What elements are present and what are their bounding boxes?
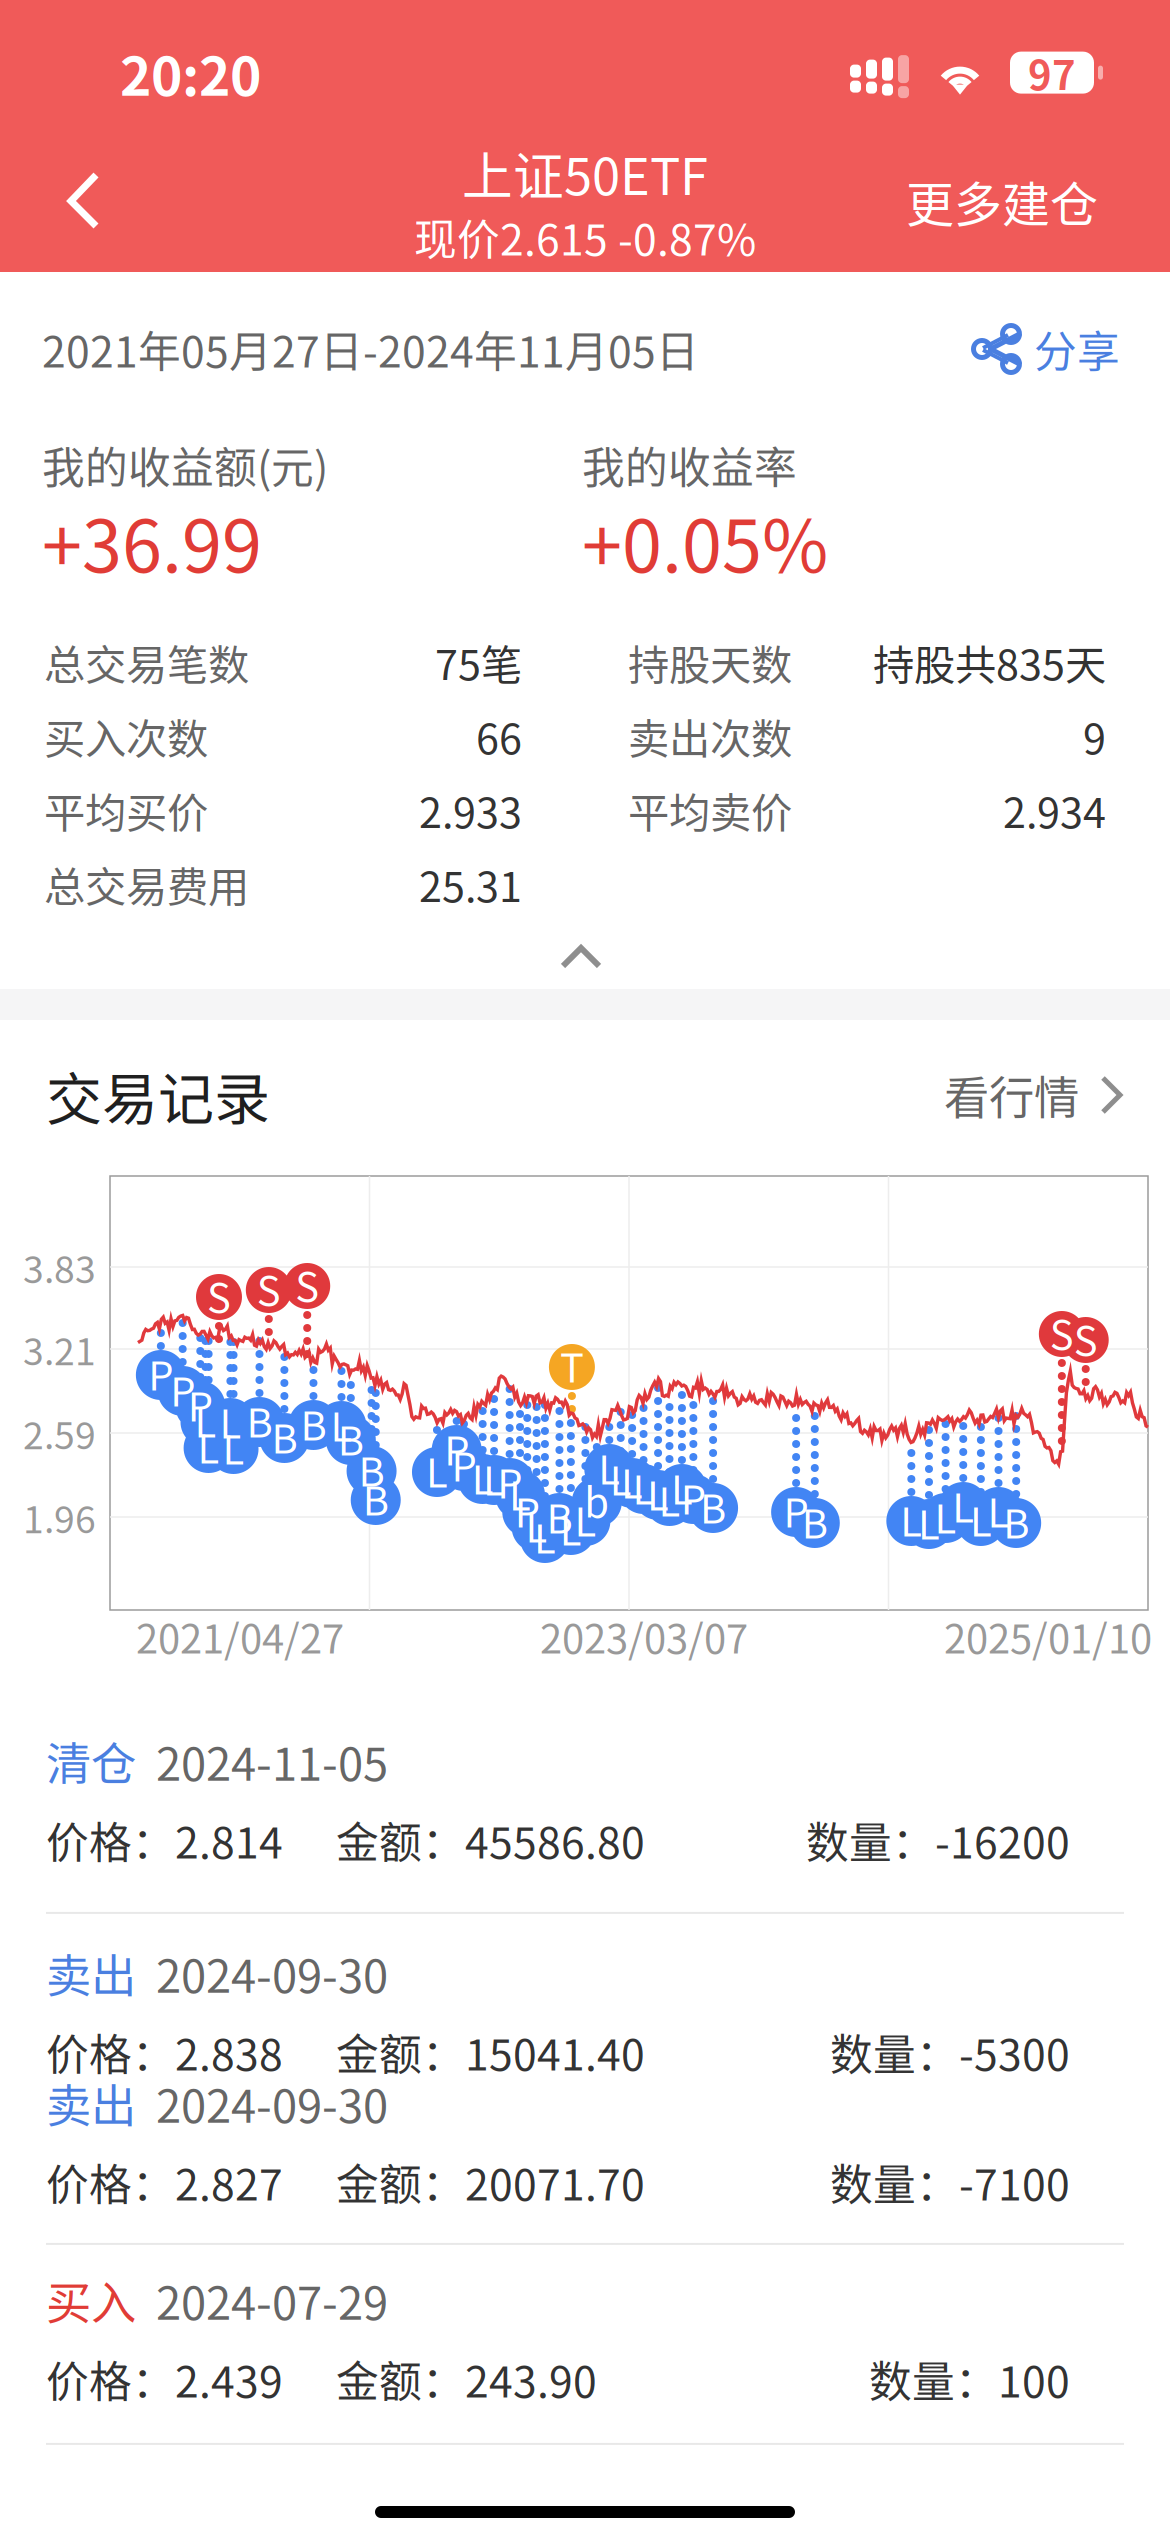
staticText: 看行情	[944, 1062, 1079, 1128]
staticText: 持股天数	[628, 632, 792, 692]
staticText: 价格：2.827	[46, 2151, 283, 2213]
staticText: L	[621, 1452, 643, 1510]
staticText: 持股共835天	[873, 632, 1106, 692]
staticText: 2.59	[23, 1406, 96, 1460]
staticText: L	[598, 1438, 620, 1496]
staticText: P	[148, 1344, 173, 1402]
staticText: 价格：2.814	[46, 1809, 283, 1871]
staticText: L	[219, 1392, 241, 1450]
staticText: P	[784, 1481, 809, 1539]
staticText: 金额：15041.40	[336, 2021, 645, 2083]
staticText: 价格：2.439	[46, 2348, 283, 2410]
staticText: L	[330, 1395, 352, 1453]
staticText: 卖出次数	[628, 706, 792, 766]
staticText: L	[658, 1470, 680, 1528]
staticText: 现价2.615 -0.87%	[414, 206, 756, 268]
staticText: B	[300, 1394, 326, 1452]
staticText: 97	[1028, 44, 1076, 102]
staticText: S	[295, 1255, 319, 1313]
button[interactable]: 卖出	[0, 1914, 1170, 2074]
staticText: L	[526, 1496, 548, 1554]
button[interactable]: 卖出	[0, 2074, 1170, 2243]
staticText: +0.05%	[582, 489, 828, 593]
staticText: S	[257, 1259, 281, 1317]
staticText: 我的收益率	[582, 434, 797, 496]
button[interactable]: 看行情	[944, 1062, 1124, 1128]
staticText: +36.99	[42, 489, 262, 593]
staticText: L	[632, 1458, 654, 1516]
staticText: 3.83	[23, 1240, 96, 1294]
staticText: L	[194, 1391, 216, 1449]
staticText: S	[1074, 1309, 1098, 1367]
staticText: P	[451, 1435, 476, 1493]
staticText: 20:20	[120, 34, 261, 111]
staticText: 2021年05月27日-2024年11月05日	[42, 318, 699, 380]
staticText: 卖出	[46, 1940, 136, 2006]
staticText: 金额：243.90	[336, 2348, 597, 2410]
staticText: L	[987, 1481, 1009, 1539]
staticText: B	[359, 1440, 385, 1498]
staticText: 3.21	[23, 1322, 96, 1376]
staticText: S	[207, 1266, 231, 1324]
staticText: L	[610, 1449, 632, 1507]
staticText: 1.96	[23, 1490, 96, 1544]
staticText: 2.933	[419, 780, 522, 840]
staticText: 买入次数	[44, 706, 208, 766]
button[interactable]: 清仓	[0, 1738, 1170, 1912]
staticText: B	[246, 1391, 272, 1449]
staticText: L	[900, 1490, 922, 1548]
staticText: 清仓	[46, 1728, 136, 1794]
staticText: 更多建仓	[906, 166, 1098, 236]
staticText: L	[574, 1490, 596, 1548]
staticText: 2023/03/07	[540, 1607, 748, 1665]
staticText: L	[222, 1418, 244, 1476]
staticText: 我的收益额(元)	[42, 434, 328, 496]
staticText: 75笔	[435, 632, 522, 692]
staticText: 金额：20071.70	[336, 2151, 645, 2213]
staticText: L	[952, 1476, 974, 1534]
staticText: T	[560, 1336, 584, 1394]
staticText: 2024-07-29	[156, 2267, 388, 2333]
staticText: 卖出	[46, 2070, 136, 2136]
staticText: P	[515, 1481, 540, 1539]
staticText: 66	[476, 706, 522, 766]
staticText: B	[1003, 1492, 1029, 1550]
button[interactable]: 收起	[0, 921, 1166, 989]
staticText: P	[444, 1419, 469, 1477]
staticText: L	[198, 1417, 220, 1475]
staticText: P	[497, 1452, 522, 1510]
staticText: 数量：100	[869, 2348, 1070, 2410]
staticText: 数量：-7100	[830, 2151, 1070, 2213]
staticText: S	[1050, 1303, 1074, 1361]
button[interactable]: 更多建仓	[882, 142, 1170, 260]
staticText: L	[472, 1448, 494, 1506]
staticText: 数量：-5300	[830, 2021, 1070, 2083]
staticText: B	[802, 1492, 828, 1550]
staticText: L	[970, 1490, 992, 1548]
staticText: B	[700, 1477, 726, 1535]
staticText: 2025/01/10	[944, 1607, 1152, 1665]
button[interactable]: 分享	[972, 318, 1120, 380]
staticText: L	[426, 1441, 448, 1499]
staticText: b	[584, 1471, 609, 1529]
button[interactable]: 买入	[0, 2245, 1170, 2443]
staticText: 金额：45586.80	[336, 1809, 645, 1871]
staticText: 上证50ETF	[462, 136, 708, 210]
staticText: P	[170, 1360, 195, 1418]
staticText: L	[483, 1449, 505, 1507]
staticText: L	[560, 1499, 582, 1557]
staticText: L	[918, 1493, 940, 1551]
staticText: 2.934	[1003, 780, 1106, 840]
staticText: 总交易笔数	[44, 632, 249, 692]
staticText: 2021/04/27	[136, 1607, 344, 1665]
staticText: 数量：-16200	[806, 1809, 1070, 1871]
button[interactable]: 返回	[0, 142, 131, 260]
staticText: 平均买价	[44, 780, 208, 840]
staticText: B	[363, 1469, 389, 1527]
staticText: 总交易费用	[44, 854, 249, 914]
staticText: 25.31	[419, 854, 522, 914]
staticText: 9	[1083, 706, 1106, 766]
staticText: 2024-09-30	[156, 1940, 388, 2006]
staticText: L	[935, 1487, 957, 1545]
staticText: 买入	[46, 2267, 136, 2333]
